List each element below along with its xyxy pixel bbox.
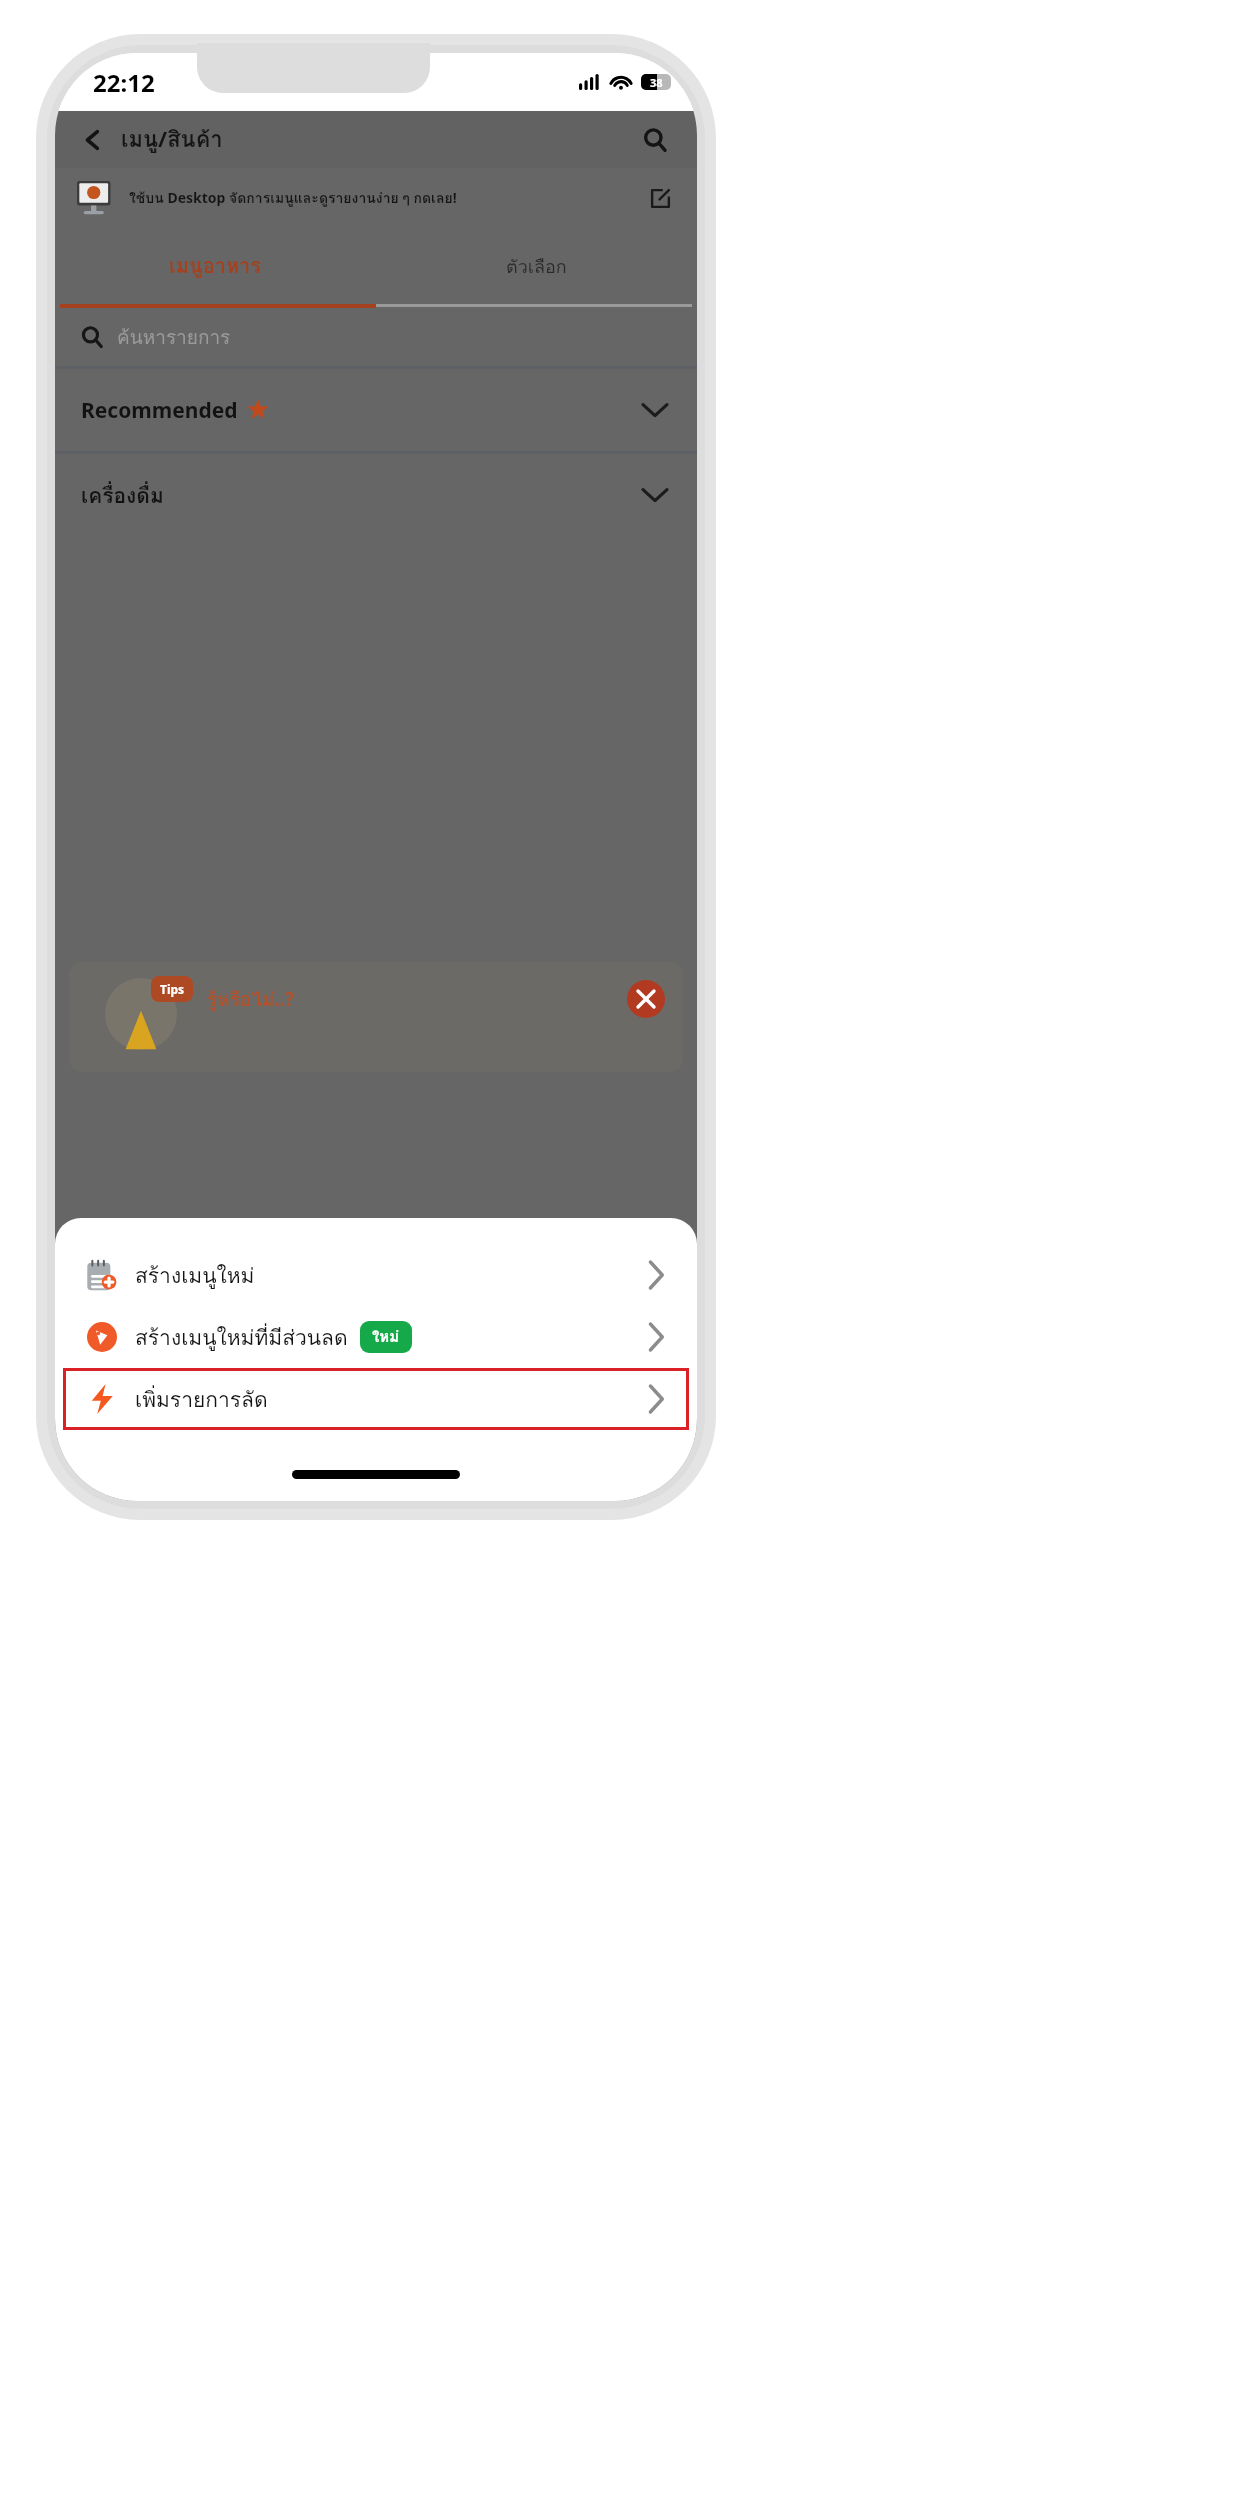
button[interactable]: ใช้บน Desktop จัดการเมนูและดูรายงานง่าย … xyxy=(55,168,697,228)
staticText: 22:12 xyxy=(93,66,155,99)
button[interactable]: ตัวเลือก xyxy=(376,228,697,304)
button[interactable]: Close xyxy=(627,980,665,1018)
button[interactable]: Tips xyxy=(69,962,683,1072)
staticText: รู้หรือไม่..? xyxy=(207,984,295,1014)
staticText: เพิ่มรายการลัด xyxy=(135,1383,268,1416)
staticText: เมนูอาหาร xyxy=(169,250,262,282)
staticText: 38 xyxy=(650,75,663,90)
button[interactable]: เครื่องดื่ม xyxy=(55,454,697,536)
staticText: ตัวเลือก xyxy=(506,252,567,281)
staticText: สร้างเมนูใหม่ xyxy=(135,1259,255,1292)
staticText: ใหม่ xyxy=(372,1325,400,1349)
button[interactable]: Back xyxy=(73,120,113,160)
staticText: เครื่องดื่ม xyxy=(81,479,164,512)
button[interactable]: สร้างเมนูใหม่ xyxy=(55,1244,697,1306)
button[interactable]: สร้างเมนูใหม่ที่มีส่วนลด xyxy=(55,1306,697,1368)
staticText: Recommended xyxy=(81,396,238,425)
button[interactable]: Search xyxy=(633,118,677,162)
staticText: เมนู/สินค้า xyxy=(121,122,223,157)
button[interactable]: ค้นหารายการ xyxy=(55,308,697,366)
staticText: ค้นหารายการ xyxy=(117,322,231,352)
button[interactable]: เมนูอาหาร xyxy=(55,228,376,304)
staticText: Tips xyxy=(160,981,185,997)
button[interactable]: Recommended xyxy=(55,369,697,451)
button[interactable]: เพิ่มรายการลัด xyxy=(63,1368,689,1430)
staticText: สร้างเมนูใหม่ที่มีส่วนลด xyxy=(135,1321,348,1354)
staticText: ใช้บน Desktop จัดการเมนูและดูรายงานง่าย … xyxy=(129,187,457,209)
